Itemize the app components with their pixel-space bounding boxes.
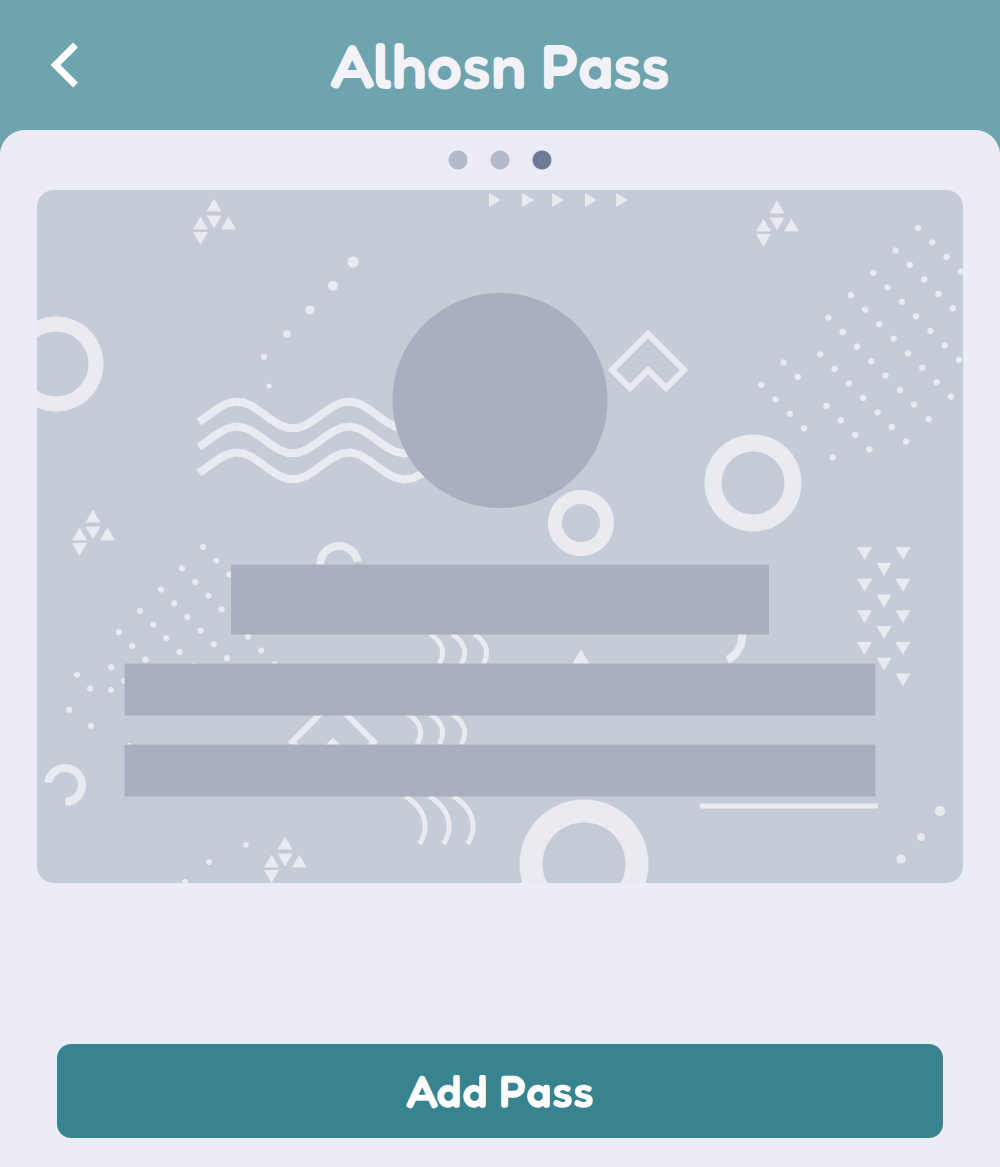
staticText: Add Pass: [406, 1064, 594, 1118]
button[interactable]: Add Pass: [57, 1044, 943, 1138]
staticText: Alhosn Pass: [330, 27, 670, 103]
button[interactable]: Back: [17, 13, 114, 117]
